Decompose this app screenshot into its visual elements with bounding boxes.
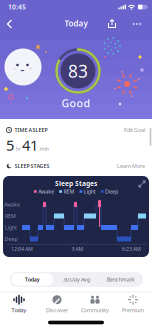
staticText: REM (63, 188, 74, 195)
staticText: Deep (4, 235, 17, 243)
staticText: 30 Day Avg (63, 276, 90, 283)
staticText: SLEEP STAGES (14, 162, 49, 170)
staticText: Sleep Stages (55, 179, 97, 188)
button[interactable]: Discover (38, 293, 76, 315)
button[interactable]: Edit Goal (124, 126, 145, 134)
staticText: Deep (105, 188, 118, 195)
staticText: Premium (122, 307, 144, 314)
staticText: min (39, 145, 48, 152)
button[interactable]: Premium (114, 293, 152, 315)
staticText: hr (15, 145, 20, 152)
staticText: Today (25, 276, 40, 283)
staticText: 12:04 AM (11, 245, 33, 253)
button[interactable]: Learn More (117, 162, 145, 170)
staticText: Awake (38, 188, 54, 195)
staticText: Benchmark (107, 276, 135, 283)
staticText: TIME ASLEEP (14, 126, 47, 134)
staticText: Light (5, 224, 17, 231)
staticText: 3 AM (71, 245, 83, 253)
staticText: Awake (4, 201, 20, 208)
staticText: Discover (46, 307, 68, 314)
staticText: Today (11, 307, 26, 314)
button[interactable] (107, 19, 117, 29)
staticText: 41 (22, 135, 38, 155)
button[interactable] (138, 180, 146, 188)
button[interactable]: Benchmark (99, 272, 143, 287)
staticText: 5 (6, 135, 14, 155)
staticText: Community (81, 307, 109, 314)
button[interactable]: 30 Day Avg (54, 272, 99, 287)
staticText: Good (61, 96, 90, 110)
button[interactable]: Community (76, 293, 114, 315)
staticText: Learn More (117, 162, 145, 170)
button[interactable] (130, 19, 144, 29)
staticText: 6:23 AM (122, 245, 141, 253)
staticText: 83 (68, 59, 88, 82)
button[interactable]: Today (0, 293, 38, 315)
staticText: Edit Goal (124, 126, 145, 134)
staticText: REM (5, 212, 16, 220)
staticText: Light (84, 188, 96, 195)
button[interactable] (5, 19, 15, 29)
button[interactable]: Today (10, 272, 54, 287)
staticText: 10:45 (8, 3, 26, 11)
staticText: Today (64, 18, 87, 29)
